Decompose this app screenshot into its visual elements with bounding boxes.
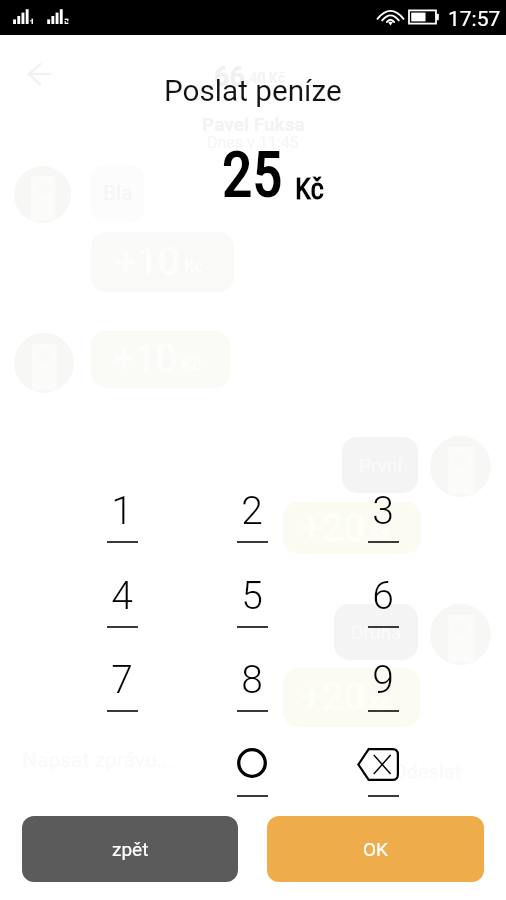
button[interactable]: 6 bbox=[341, 560, 425, 636]
staticText: zpět bbox=[112, 838, 149, 860]
staticText: Kč bbox=[295, 172, 324, 206]
button[interactable]: 9 bbox=[341, 644, 425, 720]
button[interactable]: OK bbox=[267, 816, 484, 882]
button[interactable]: zpět bbox=[22, 816, 238, 882]
staticText: 2 bbox=[210, 488, 294, 534]
staticText: 4 bbox=[80, 573, 164, 619]
staticText: ,40 Kč bbox=[246, 70, 285, 86]
button[interactable]: Back bbox=[17, 42, 61, 86]
staticText: 6 bbox=[341, 573, 425, 619]
staticText: 9 bbox=[341, 657, 425, 703]
button[interactable]: 5 bbox=[210, 560, 294, 636]
staticText: 3 bbox=[341, 488, 425, 534]
staticText: Kč bbox=[370, 692, 390, 712]
staticText: Druhá bbox=[351, 621, 402, 643]
staticText: Pavel Fuksa bbox=[202, 113, 305, 135]
staticText: 25 bbox=[222, 139, 283, 210]
button[interactable]: Backspace bbox=[341, 729, 425, 805]
staticText: 66 bbox=[214, 61, 245, 93]
button[interactable]: 2 bbox=[210, 475, 294, 551]
staticText: 17:57 bbox=[448, 7, 501, 32]
button[interactable]: 4 bbox=[80, 560, 164, 636]
button[interactable]: 1 bbox=[80, 475, 164, 551]
button[interactable]: Zero bbox=[210, 729, 294, 805]
staticText: 5 bbox=[210, 573, 294, 619]
staticText: 8 bbox=[210, 657, 294, 703]
staticText: Dnes v 11:45 bbox=[207, 133, 299, 152]
staticText: +20 bbox=[301, 675, 366, 720]
staticText: 1 bbox=[80, 488, 164, 534]
button[interactable]: 7 bbox=[80, 644, 164, 720]
button[interactable]: 8 bbox=[210, 644, 294, 720]
staticText: Odeslat bbox=[393, 760, 462, 783]
staticText: OK bbox=[363, 838, 388, 860]
staticText: +20 bbox=[301, 506, 366, 551]
staticText: Poslat peníze bbox=[164, 73, 342, 108]
staticText: 7 bbox=[80, 657, 164, 703]
staticText: Kč bbox=[370, 522, 390, 542]
button[interactable]: 3 bbox=[341, 475, 425, 551]
